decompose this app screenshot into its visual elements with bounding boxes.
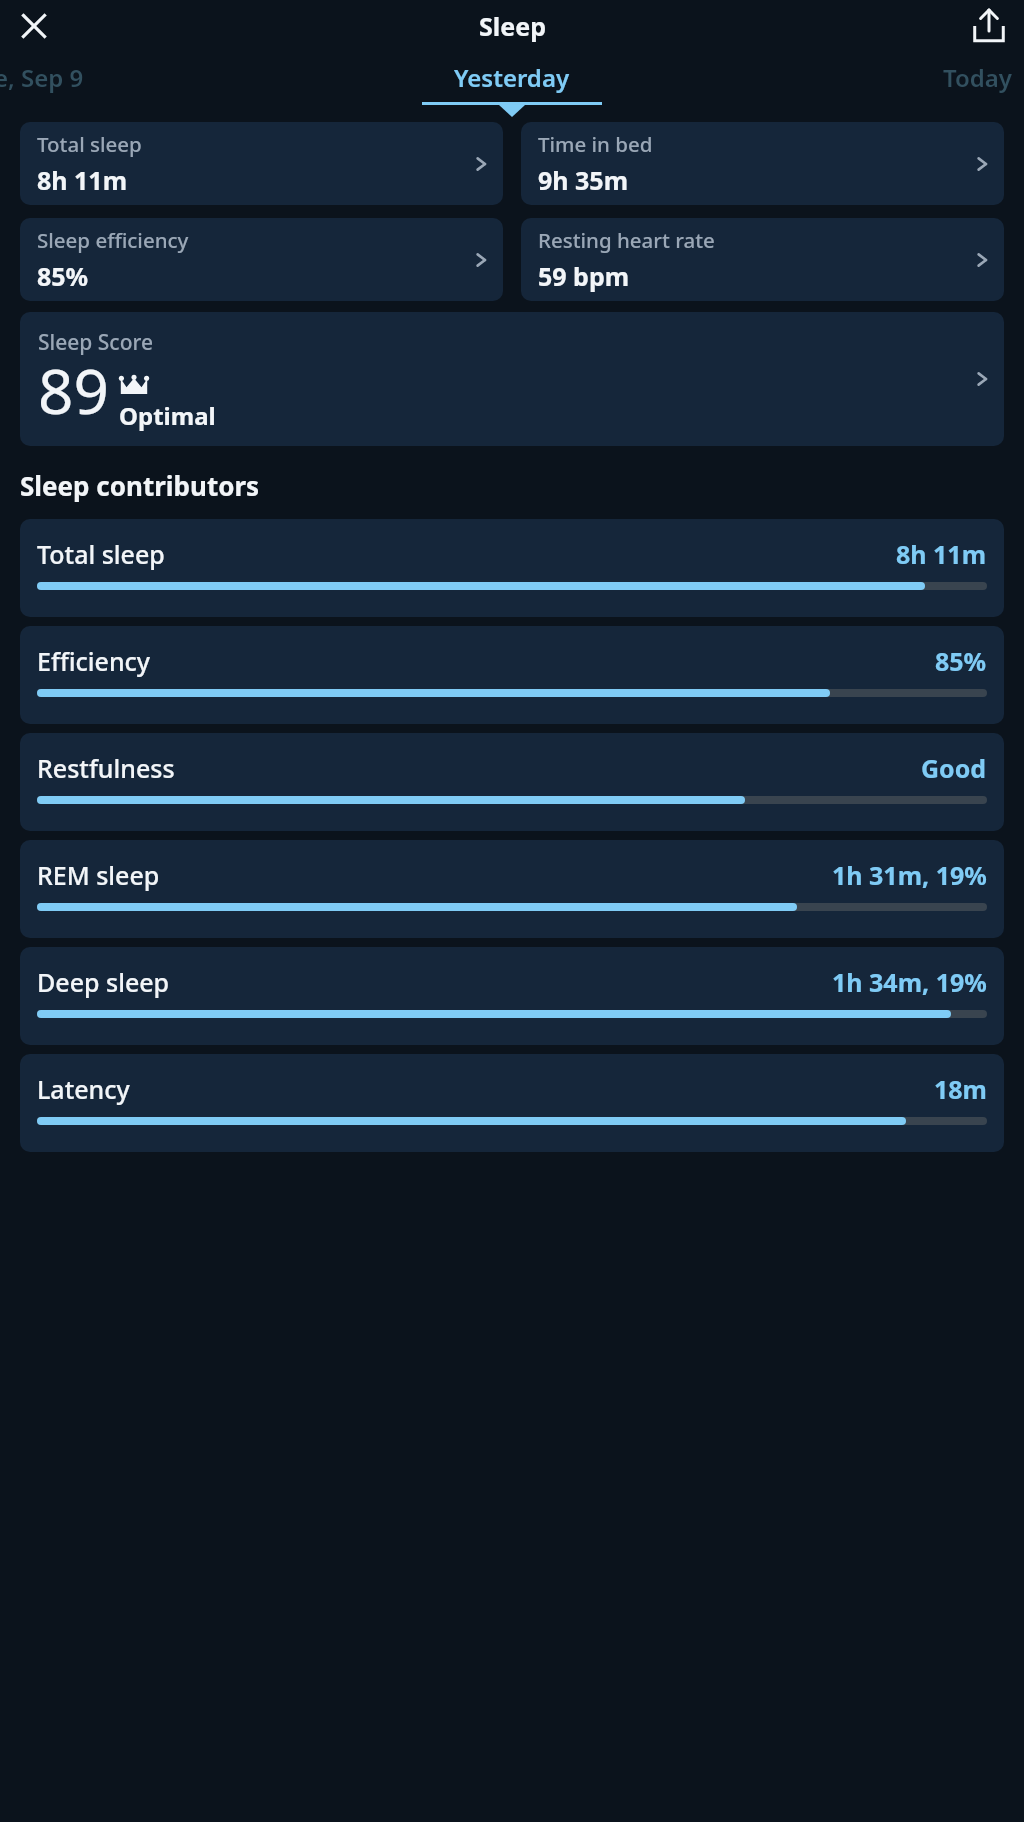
button[interactable]: Share xyxy=(968,5,1010,47)
staticText: Yesterday xyxy=(454,61,570,94)
staticText: Total sleep xyxy=(37,537,165,571)
staticText: 18m xyxy=(934,1072,987,1106)
button[interactable]: Close xyxy=(12,4,56,48)
button[interactable]: Resting heart rate xyxy=(521,218,1004,301)
staticText: 1h 34m, 19% xyxy=(832,965,987,999)
staticText: 9h 35m xyxy=(538,163,629,197)
staticText: Sleep contributors xyxy=(20,468,260,503)
button[interactable]: Today xyxy=(943,61,1012,94)
button[interactable]: e, Sep 9 xyxy=(0,61,84,94)
staticText: Resting heart rate xyxy=(538,226,715,254)
staticText: Restfulness xyxy=(37,751,175,785)
staticText: 59 bpm xyxy=(538,259,630,293)
staticText: Latency xyxy=(37,1072,130,1106)
staticText: 8h 11m xyxy=(37,163,128,197)
staticText: 85% xyxy=(37,259,89,293)
button[interactable]: REM sleep xyxy=(20,840,1004,938)
button[interactable]: Time in bed xyxy=(521,122,1004,205)
button[interactable]: Latency xyxy=(20,1054,1004,1152)
staticText: Time in bed xyxy=(538,130,653,158)
staticText: REM sleep xyxy=(37,858,160,892)
staticText: Total sleep xyxy=(37,130,142,158)
staticText: 85% xyxy=(935,644,987,678)
staticText: Good xyxy=(921,751,987,785)
staticText: 89 xyxy=(38,348,109,432)
button[interactable]: Sleep efficiency xyxy=(20,218,503,301)
button[interactable]: Deep sleep xyxy=(20,947,1004,1045)
staticText: 8h 11m xyxy=(896,537,987,571)
staticText: Sleep Score xyxy=(38,328,154,357)
button[interactable]: Yesterday xyxy=(454,61,570,94)
staticText: Efficiency xyxy=(37,644,151,678)
button[interactable]: Efficiency xyxy=(20,626,1004,724)
staticText: Optimal xyxy=(119,399,216,432)
staticText: Deep sleep xyxy=(37,965,170,999)
staticText: Sleep efficiency xyxy=(37,226,189,254)
button[interactable]: Restfulness xyxy=(20,733,1004,831)
button[interactable]: Total sleep xyxy=(20,122,503,205)
staticText: 1h 31m, 19% xyxy=(832,858,987,892)
staticText: Sleep xyxy=(479,9,546,43)
button[interactable]: Total sleep xyxy=(20,519,1004,617)
button[interactable]: Sleep Score xyxy=(20,312,1004,446)
